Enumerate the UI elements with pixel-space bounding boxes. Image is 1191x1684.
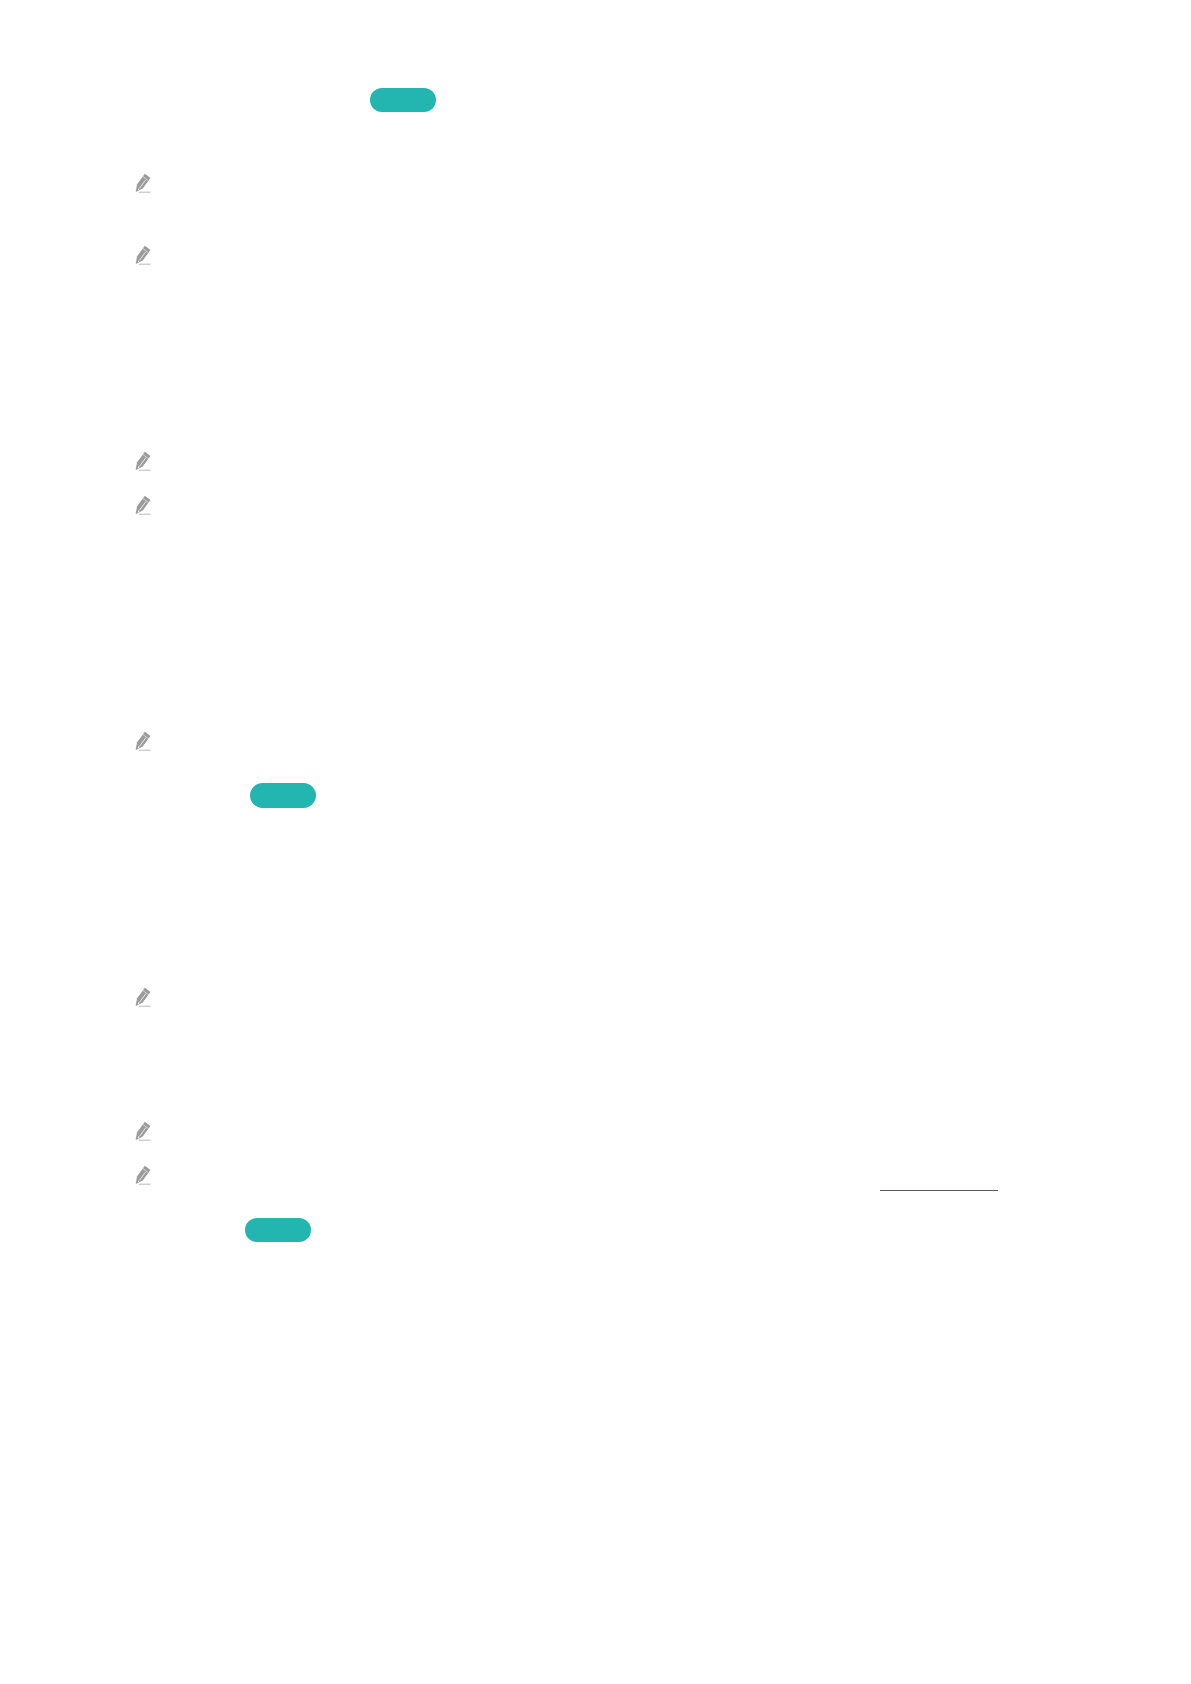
button[interactable]: Primary action <box>245 1218 311 1242</box>
button[interactable]: Edit <box>136 174 151 194</box>
button[interactable]: Edit <box>136 1166 151 1186</box>
button[interactable]: Edit <box>136 1122 151 1142</box>
button[interactable]: Edit <box>136 732 151 752</box>
button[interactable]: Edit <box>136 496 151 516</box>
button[interactable]: Primary action <box>370 88 436 112</box>
button[interactable]: Edit <box>136 988 151 1008</box>
button[interactable]: Edit <box>136 246 151 266</box>
button[interactable]: Primary action <box>250 783 316 808</box>
button[interactable]: Edit <box>136 452 151 472</box>
